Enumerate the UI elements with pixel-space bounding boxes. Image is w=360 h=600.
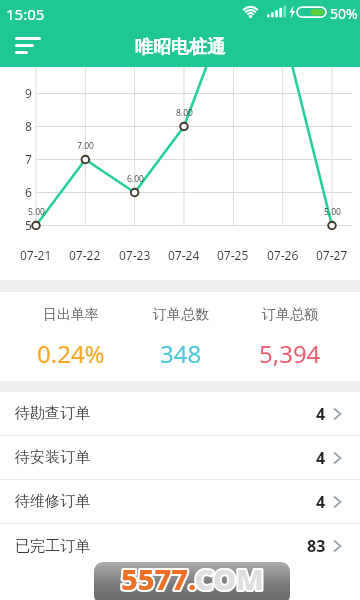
staticText: 8.00 — [176, 107, 193, 119]
staticText: 07-23 — [119, 247, 151, 263]
staticText: 348 — [160, 337, 202, 370]
staticText: 待勘查订单 — [15, 404, 90, 423]
staticText: 5.00 — [324, 206, 341, 218]
staticText: 8 — [25, 118, 32, 134]
button[interactable] — [0, 28, 40, 67]
staticText: 5.00 — [28, 206, 45, 218]
staticText: 5577.COM — [121, 562, 264, 598]
staticText: 已完工订单 — [15, 537, 90, 556]
button[interactable]: 待勘查订单 — [0, 392, 360, 436]
staticText: 订单总额 — [262, 306, 318, 324]
button[interactable]: 订单总额 — [235, 292, 344, 381]
staticText: 6 — [25, 184, 32, 200]
staticText: 07-25 — [217, 247, 249, 263]
staticText: 15:05 — [6, 4, 45, 24]
staticText: 唯昭电桩通 — [135, 36, 225, 59]
staticText: 订单总数 — [153, 306, 209, 324]
staticText: 4 — [316, 447, 326, 469]
staticText: 07-26 — [267, 247, 299, 263]
staticText: 日出单率 — [43, 306, 99, 324]
staticText: 07-27 — [316, 247, 348, 263]
button[interactable]: 订单总数 — [126, 292, 235, 381]
staticText: 07-24 — [168, 247, 200, 263]
staticText: 07-22 — [69, 247, 101, 263]
staticText: 0.24% — [37, 337, 105, 370]
staticText: 待维修订单 — [15, 492, 90, 511]
staticText: 83 — [307, 535, 326, 557]
staticText: 50% — [330, 4, 358, 23]
staticText: 5,394 — [259, 337, 321, 370]
staticText: 4 — [316, 491, 326, 513]
staticText: 7.00 — [77, 140, 94, 152]
staticText: 待安装订单 — [15, 448, 90, 467]
staticText: 6.00 — [127, 173, 144, 185]
staticText: 4 — [316, 403, 326, 425]
button[interactable]: 待安装订单 — [0, 436, 360, 480]
staticText: 5 — [25, 217, 32, 233]
staticText: 7 — [25, 151, 32, 167]
staticText: 5577.COM — [121, 562, 264, 598]
staticText: 07-21 — [20, 247, 52, 263]
button[interactable]: 已完工订单 — [0, 524, 360, 568]
button[interactable]: 待维修订单 — [0, 480, 360, 524]
button[interactable]: 日出单率 — [16, 292, 126, 381]
staticText: 9 — [25, 85, 32, 101]
